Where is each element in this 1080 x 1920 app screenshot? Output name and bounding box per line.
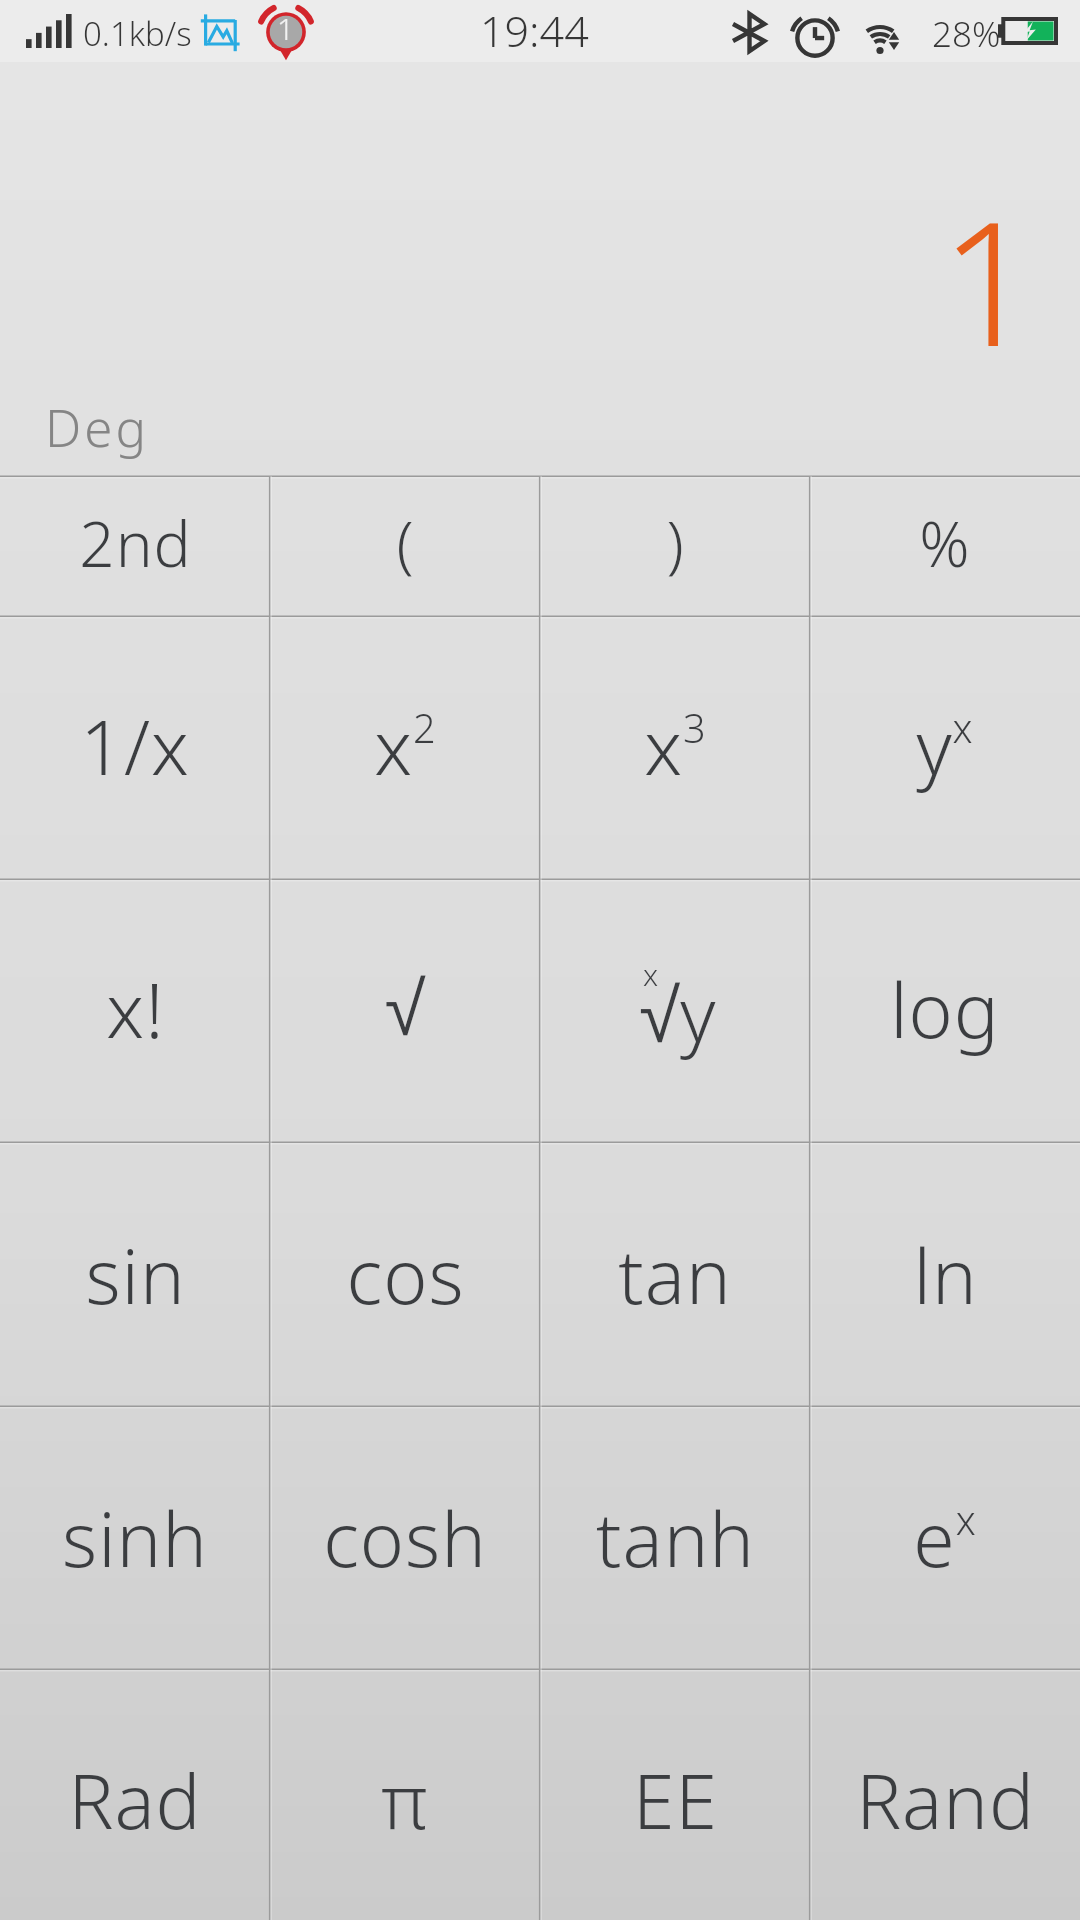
staticText: π: [381, 1749, 429, 1851]
button[interactable]: ln: [810, 1142, 1080, 1406]
staticText: log: [890, 958, 1000, 1060]
staticText: 0.1kb/s: [83, 11, 192, 56]
staticText: Deg: [45, 392, 149, 461]
staticText: ln: [913, 1224, 978, 1326]
button[interactable]: Rad: [0, 1669, 270, 1920]
button[interactable]: Square root: [270, 879, 540, 1142]
staticText: Rand: [856, 1749, 1035, 1851]
staticText: EE: [633, 1749, 718, 1851]
staticText: x2: [374, 695, 437, 797]
button[interactable]: (: [270, 476, 540, 616]
staticText: x!: [106, 958, 165, 1060]
button[interactable]: tan: [540, 1142, 810, 1406]
button[interactable]: Rand: [810, 1669, 1080, 1920]
button[interactable]: log: [810, 879, 1080, 1142]
staticText: √: [384, 967, 427, 1051]
staticText: tan: [618, 1224, 732, 1326]
button[interactable]: sinh: [0, 1406, 270, 1669]
button[interactable]: ex: [810, 1406, 1080, 1669]
staticText: %: [919, 501, 971, 585]
staticText: Rad: [68, 1749, 202, 1851]
staticText: 1/x: [80, 695, 190, 797]
button[interactable]: EE: [540, 1669, 810, 1920]
staticText: (: [396, 501, 415, 585]
button[interactable]: yx: [810, 616, 1080, 879]
staticText: sin: [85, 1224, 186, 1326]
staticText: sinh: [62, 1487, 208, 1589]
button[interactable]: x2: [270, 616, 540, 879]
staticText: x: [643, 954, 659, 995]
button[interactable]: cosh: [270, 1406, 540, 1669]
staticText: yx: [916, 695, 974, 797]
button[interactable]: 1/x: [0, 616, 270, 879]
staticText: 1: [940, 162, 1039, 396]
staticText: 2nd: [79, 501, 192, 585]
button[interactable]: tanh: [540, 1406, 810, 1669]
staticText: cosh: [323, 1487, 487, 1589]
button[interactable]: x3: [540, 616, 810, 879]
staticText: 28%: [932, 10, 1001, 58]
staticText: cos: [346, 1224, 465, 1326]
button[interactable]: x-th root of y: [540, 879, 810, 1142]
staticText: 1: [277, 8, 295, 49]
staticText: 19:44: [480, 1, 589, 60]
staticText: √y: [639, 962, 716, 1064]
staticText: ): [666, 501, 685, 585]
button[interactable]: 2nd: [0, 476, 270, 616]
button[interactable]: x!: [0, 879, 270, 1142]
staticText: tanh: [596, 1487, 755, 1589]
staticText: ex: [913, 1487, 977, 1589]
button[interactable]: %: [810, 476, 1080, 616]
button[interactable]: ): [540, 476, 810, 616]
button[interactable]: sin: [0, 1142, 270, 1406]
button[interactable]: π: [270, 1669, 540, 1920]
staticText: x3: [644, 695, 707, 797]
button[interactable]: cos: [270, 1142, 540, 1406]
